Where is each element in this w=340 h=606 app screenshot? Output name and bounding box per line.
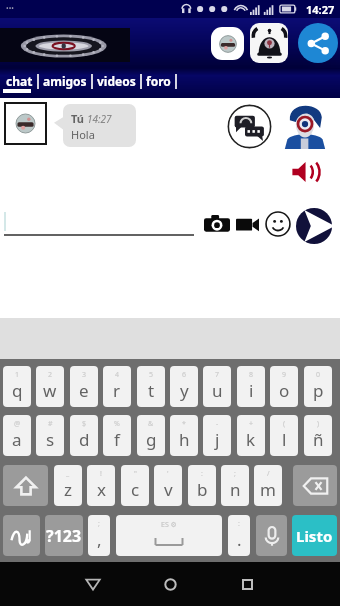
- staticText: ,: [97, 528, 102, 551]
- staticText: b: [197, 478, 208, 501]
- button[interactable]: ;: [88, 515, 110, 556]
- staticText: 8: [249, 370, 254, 380]
- staticText: videos: [97, 73, 136, 89]
- button[interactable]: Message input: [4, 209, 194, 236]
- button[interactable]: ?123: [45, 515, 83, 556]
- staticText: :: [201, 469, 203, 479]
- button[interactable]: Listo: [292, 515, 337, 556]
- button[interactable]: Back: [71, 562, 115, 606]
- button[interactable]: 8: [237, 366, 265, 407]
- button[interactable]: 1: [3, 366, 31, 407]
- staticText: amigos: [43, 73, 87, 89]
- staticText: ): [317, 419, 320, 429]
- button[interactable]: Shift: [3, 465, 48, 506]
- button[interactable]: Alarm: [250, 23, 288, 63]
- staticText: 2: [48, 370, 53, 380]
- button[interactable]: -: [203, 415, 231, 456]
- staticText: ;: [98, 519, 100, 529]
- button[interactable]: Send: [296, 207, 334, 245]
- button[interactable]: 7: [203, 366, 231, 407]
- button[interactable]: User avatar: [284, 101, 326, 149]
- button[interactable]: :: [228, 515, 250, 556]
- button[interactable]: Your avatar: [6, 104, 45, 143]
- staticText: ES ⚙: [161, 520, 177, 530]
- button[interactable]: 4: [103, 366, 131, 407]
- staticText: v: [164, 478, 173, 501]
- button[interactable]: foro: [142, 71, 175, 91]
- staticText: #: [48, 419, 53, 429]
- button[interactable]: Home: [148, 562, 192, 606]
- staticText: ?123: [46, 525, 82, 547]
- staticText: r: [113, 379, 121, 402]
- button[interactable]: 6: [170, 366, 198, 407]
- staticText: 14:27: [87, 112, 112, 126]
- button[interactable]: #: [36, 415, 64, 456]
- staticText: a: [12, 428, 22, 451]
- button[interactable]: Recents: [225, 562, 269, 606]
- staticText: @: [14, 419, 21, 429]
- button[interactable]: Voice input: [256, 515, 287, 556]
- button[interactable]: ': [154, 465, 182, 506]
- button[interactable]: chat: [2, 71, 37, 91]
- staticText: 9: [282, 370, 287, 380]
- staticText: e: [79, 379, 89, 402]
- button[interactable]: Language: [3, 515, 40, 556]
- staticText: Listo: [296, 526, 333, 546]
- staticText: chat: [6, 73, 33, 89]
- staticText: ñ: [313, 428, 324, 451]
- button[interactable]: :: [188, 465, 216, 506]
- button[interactable]: ): [304, 415, 332, 456]
- button[interactable]: App logo: [0, 28, 130, 62]
- staticText: t: [148, 379, 155, 402]
- button[interactable]: @: [3, 415, 31, 456]
- button[interactable]: Sound: [291, 160, 319, 184]
- button[interactable]: amigos: [39, 71, 91, 91]
- button[interactable]: /: [254, 465, 282, 506]
- button[interactable]: _: [54, 465, 82, 506]
- staticText: /: [267, 469, 270, 479]
- staticText: 7: [215, 370, 220, 380]
- button[interactable]: Messages: [227, 104, 272, 149]
- button[interactable]: Video: [236, 215, 259, 234]
- button[interactable]: !: [87, 465, 115, 506]
- staticText: +: [249, 419, 254, 429]
- button[interactable]: 2: [36, 366, 64, 407]
- staticText: k: [246, 428, 256, 451]
- button[interactable]: &: [137, 415, 165, 456]
- button[interactable]: 0: [304, 366, 332, 407]
- button[interactable]: Profile: [211, 27, 244, 60]
- button[interactable]: +: [237, 415, 265, 456]
- staticText: m: [260, 478, 276, 501]
- staticText: foro: [146, 73, 171, 89]
- staticText: z: [64, 478, 72, 501]
- staticText: o: [279, 379, 290, 402]
- button[interactable]: ;: [221, 465, 249, 506]
- staticText: j: [215, 428, 220, 451]
- staticText: p: [313, 379, 324, 402]
- button[interactable]: Backspace: [293, 465, 337, 506]
- staticText: $: [82, 419, 87, 429]
- button[interactable]: Share: [298, 23, 338, 63]
- staticText: ;: [234, 469, 236, 479]
- button[interactable]: %: [103, 415, 131, 456]
- button[interactable]: *: [170, 415, 198, 456]
- staticText: 4: [115, 370, 120, 380]
- button[interactable]: 3: [70, 366, 98, 407]
- button[interactable]: Space: [116, 515, 222, 556]
- staticText: _: [66, 469, 70, 479]
- staticText: Tú: [71, 111, 84, 126]
- staticText: y: [180, 379, 189, 402]
- button[interactable]: ": [121, 465, 149, 506]
- button[interactable]: (: [270, 415, 298, 456]
- staticText: •••: [6, 4, 14, 14]
- staticText: g: [146, 428, 157, 451]
- button[interactable]: 9: [270, 366, 298, 407]
- staticText: 3: [82, 370, 87, 380]
- staticText: h: [179, 428, 190, 451]
- button[interactable]: 5: [137, 366, 165, 407]
- button[interactable]: videos: [93, 71, 140, 91]
- button[interactable]: Camera: [204, 212, 230, 236]
- button[interactable]: $: [70, 415, 98, 456]
- staticText: s: [46, 428, 55, 451]
- button[interactable]: Emoji: [265, 211, 291, 237]
